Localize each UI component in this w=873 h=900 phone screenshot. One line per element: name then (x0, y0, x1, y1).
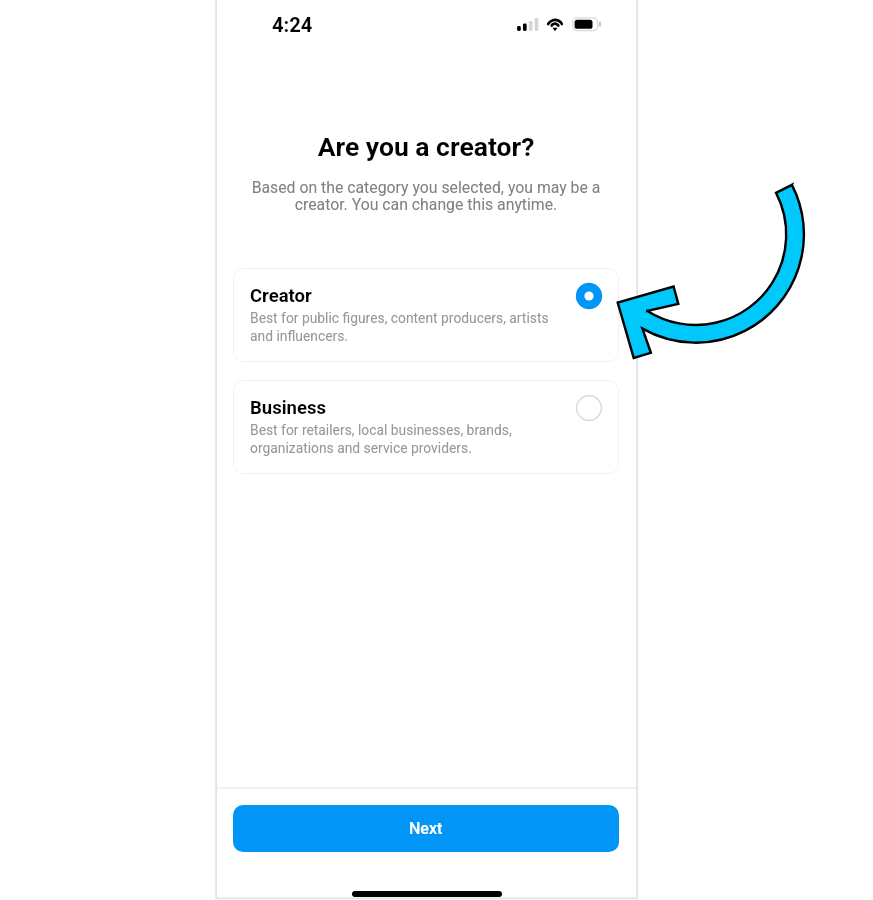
staticText: Business (250, 397, 326, 419)
button[interactable]: Creator (233, 268, 619, 362)
button[interactable]: Creator selected (575, 282, 603, 310)
button[interactable]: Business (233, 380, 619, 474)
staticText: Best for retailers, local businesses, br… (250, 422, 512, 456)
staticText: Are you a creator? (216, 131, 636, 162)
staticText: Creator (250, 285, 312, 307)
button[interactable]: Next (233, 805, 619, 852)
staticText: Based on the category you selected, you … (216, 178, 636, 214)
staticText: Best for public figures, content produce… (250, 310, 549, 344)
staticText: 4:24 (272, 13, 313, 37)
button[interactable]: Select Business (575, 394, 603, 422)
staticText: Next (409, 819, 443, 838)
